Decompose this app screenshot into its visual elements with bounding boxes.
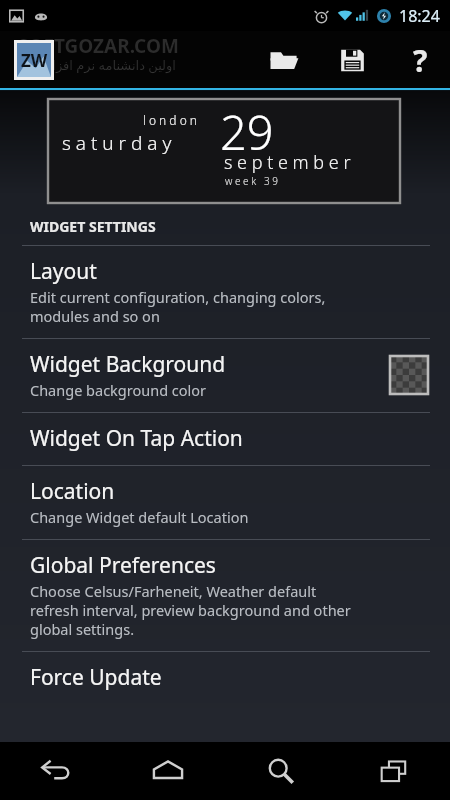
staticText: Force Update xyxy=(30,663,162,692)
staticText: w e e k 3 9 xyxy=(225,174,278,188)
staticText: Change background color xyxy=(30,380,207,400)
button[interactable]: Help xyxy=(398,38,442,82)
button[interactable]: Search xyxy=(224,742,337,800)
button[interactable]: Layout xyxy=(0,246,450,338)
staticText: Change Widget default Location xyxy=(30,507,249,527)
staticText: Choose Celsus/Farheneit, Weather default… xyxy=(30,581,351,639)
staticText: Edit current configuration, changing col… xyxy=(30,287,326,326)
staticText: Global Preferences xyxy=(30,551,216,580)
button[interactable]: l o n d o n xyxy=(48,99,400,203)
staticText: WIDGET SETTINGS xyxy=(30,217,156,236)
button[interactable]: Global Preferences xyxy=(0,540,450,651)
staticText: 18:24 xyxy=(399,5,440,27)
button[interactable]: Open xyxy=(262,38,306,82)
button[interactable]: Back xyxy=(0,742,112,800)
button[interactable]: Home xyxy=(112,742,224,800)
button[interactable]: Save xyxy=(330,38,374,82)
staticText: Location xyxy=(30,477,115,506)
staticText: l o n d o n xyxy=(143,112,198,128)
button[interactable]: Force Update xyxy=(0,652,450,704)
staticText: s a t u r d a y xyxy=(62,130,172,156)
button[interactable]: Widget Background xyxy=(0,339,450,412)
staticText: 29 xyxy=(220,100,274,164)
button[interactable]: Pick background color xyxy=(390,356,428,394)
staticText: ZW xyxy=(21,49,48,72)
button[interactable]: App icon xyxy=(14,40,54,80)
button[interactable]: Location xyxy=(0,466,450,539)
staticText: Widget On Tap Action xyxy=(30,424,243,453)
staticText: Layout xyxy=(30,257,97,286)
staticText: s e p t e m b e r xyxy=(224,150,351,175)
button[interactable]: Widget On Tap Action xyxy=(0,413,450,465)
staticText: ? xyxy=(413,40,428,81)
staticText: Widget Background xyxy=(30,350,226,379)
staticText: اولین دانشنامه نرم افزار xyxy=(46,56,176,74)
button[interactable]: Recents xyxy=(337,742,450,800)
staticText: SOFTGOZAR.COM xyxy=(18,33,179,59)
